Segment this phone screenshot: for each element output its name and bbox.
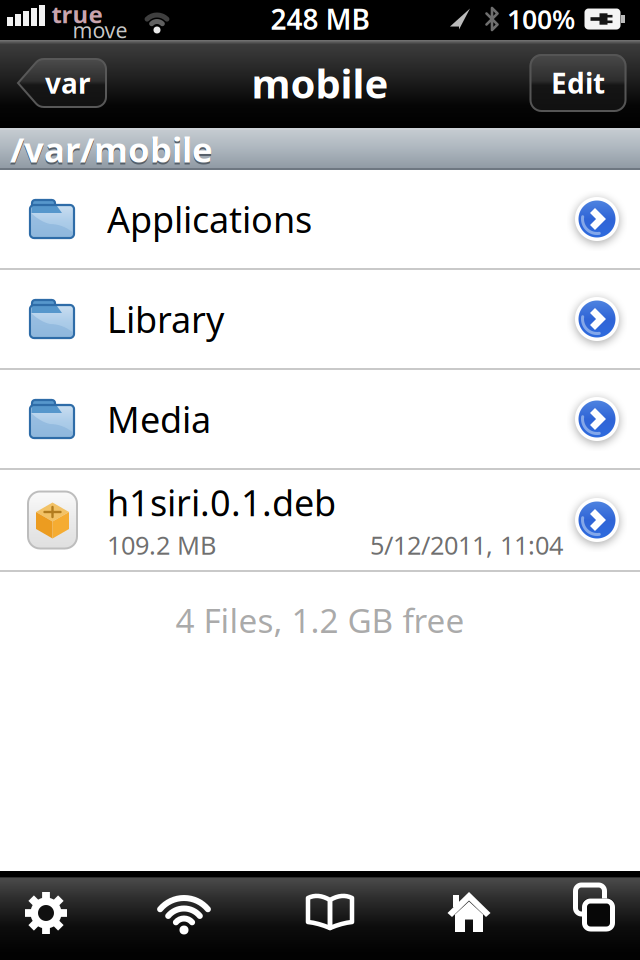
button[interactable]: h1siri.0.1.deb bbox=[0, 470, 640, 570]
button[interactable]: Library bbox=[0, 270, 640, 368]
button[interactable]: Details bbox=[575, 397, 619, 441]
staticText: 5/12/2011, 11:04 bbox=[370, 528, 563, 562]
button[interactable]: Settings bbox=[20, 887, 72, 939]
button[interactable]: Media bbox=[0, 370, 640, 468]
staticText: Applications bbox=[107, 195, 312, 243]
staticText: 109.2 MB bbox=[107, 528, 216, 562]
button[interactable]: Edit bbox=[529, 54, 626, 112]
staticText: 248 MB bbox=[270, 0, 369, 38]
staticText: 4 Files, 1.2 GB free bbox=[175, 598, 464, 642]
button[interactable]: Applications bbox=[0, 170, 640, 268]
staticText: mobile bbox=[251, 56, 388, 109]
staticText: 100% bbox=[507, 1, 575, 37]
staticText: move bbox=[72, 16, 127, 44]
staticText: Library bbox=[107, 295, 224, 343]
button[interactable]: Details bbox=[575, 297, 619, 341]
button[interactable]: Back bbox=[16, 57, 108, 109]
button[interactable]: Home bbox=[447, 892, 490, 932]
button[interactable]: Details bbox=[575, 197, 619, 241]
staticText: true bbox=[51, 0, 102, 30]
button[interactable]: Bookmarks bbox=[306, 893, 354, 931]
button[interactable]: Network bbox=[158, 889, 210, 937]
staticText: h1siri.0.1.deb bbox=[107, 478, 336, 526]
staticText: Edit bbox=[551, 64, 605, 102]
button[interactable]: Details bbox=[575, 498, 619, 542]
staticText: Media bbox=[107, 395, 211, 443]
staticText: var bbox=[45, 64, 91, 102]
button[interactable]: Tabs bbox=[574, 884, 615, 932]
staticText: /var/mobile bbox=[10, 126, 213, 172]
